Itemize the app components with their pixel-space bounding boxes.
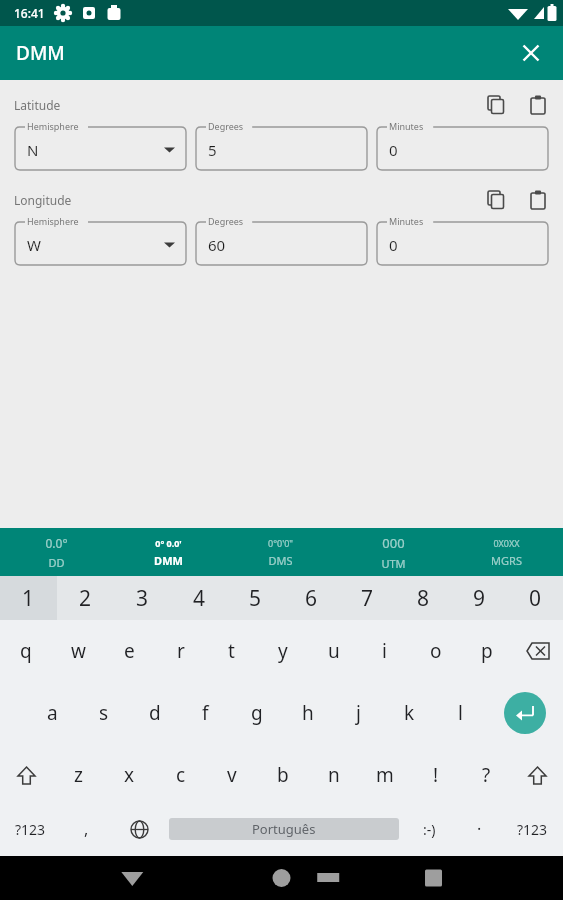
button[interactable]: 2 bbox=[57, 576, 114, 620]
button[interactable]: h bbox=[282, 682, 333, 744]
button[interactable]: p bbox=[461, 620, 512, 682]
staticText: q bbox=[20, 638, 32, 664]
staticText: 60 bbox=[208, 235, 226, 255]
button[interactable]: 0°0'0" bbox=[224, 528, 337, 576]
button[interactable]: Close bbox=[509, 31, 553, 75]
staticText: , bbox=[84, 818, 89, 840]
button[interactable]: s bbox=[78, 682, 129, 744]
staticText: 0X0XX bbox=[493, 537, 520, 549]
button[interactable]: c bbox=[155, 744, 206, 806]
staticText: n bbox=[328, 762, 340, 788]
button[interactable]: Copy bbox=[481, 187, 511, 213]
staticText: x bbox=[124, 762, 135, 788]
staticText: w bbox=[71, 638, 86, 664]
button[interactable]: g bbox=[231, 682, 282, 744]
button[interactable]: o bbox=[410, 620, 461, 682]
button[interactable]: w bbox=[52, 620, 104, 682]
button[interactable]: 6 bbox=[283, 576, 339, 620]
button[interactable]: Minutes bbox=[376, 120, 549, 171]
staticText: j bbox=[356, 700, 361, 726]
button[interactable]: 4 bbox=[171, 576, 227, 620]
staticText: MGRS bbox=[491, 553, 522, 568]
staticText: l bbox=[458, 700, 463, 726]
staticText: Minutes bbox=[389, 120, 424, 132]
staticText: h bbox=[302, 700, 314, 726]
button[interactable]: Shift bbox=[512, 744, 563, 806]
button[interactable]: r bbox=[155, 620, 206, 682]
button[interactable]: 0X0XX bbox=[450, 528, 563, 576]
button[interactable]: Hemisphere bbox=[14, 120, 187, 171]
staticText: Longitude bbox=[14, 192, 72, 208]
button[interactable]: x bbox=[104, 744, 155, 806]
button[interactable]: ? bbox=[461, 744, 512, 806]
button[interactable]: t bbox=[206, 620, 257, 682]
staticText: Latitude bbox=[14, 97, 61, 113]
button[interactable]: Backspace bbox=[512, 620, 563, 682]
button[interactable]: n bbox=[308, 744, 359, 806]
staticText: 4 bbox=[193, 584, 206, 613]
button[interactable]: , bbox=[61, 806, 111, 852]
button[interactable]: ?123 bbox=[502, 806, 563, 852]
button[interactable]: Degrees bbox=[195, 120, 368, 171]
button[interactable]: Paste bbox=[523, 92, 553, 118]
staticText: DMS bbox=[268, 553, 293, 568]
button[interactable]: Enter bbox=[486, 682, 563, 744]
button[interactable]: ?123 bbox=[0, 806, 61, 852]
staticText: N bbox=[27, 140, 39, 160]
staticText: 6 bbox=[305, 584, 318, 613]
button[interactable]: i bbox=[359, 620, 410, 682]
button[interactable]: Paste bbox=[523, 187, 553, 213]
button[interactable]: m bbox=[359, 744, 410, 806]
button[interactable]: 1 bbox=[0, 576, 57, 620]
button[interactable]: q bbox=[0, 620, 52, 682]
button[interactable]: l bbox=[435, 682, 486, 744]
staticText: k bbox=[404, 700, 415, 726]
button[interactable]: Hemisphere bbox=[14, 215, 187, 266]
button[interactable]: Change language bbox=[111, 806, 167, 852]
button[interactable]: 0 bbox=[507, 576, 563, 620]
button[interactable]: b bbox=[257, 744, 308, 806]
staticText: ?123 bbox=[15, 820, 46, 839]
button[interactable]: d bbox=[129, 682, 180, 744]
button[interactable]: :-) bbox=[401, 806, 457, 852]
button[interactable]: u bbox=[308, 620, 359, 682]
button[interactable]: Copy bbox=[481, 92, 511, 118]
button[interactable]: f bbox=[180, 682, 231, 744]
button[interactable]: v bbox=[206, 744, 257, 806]
button[interactable]: a bbox=[27, 682, 78, 744]
button[interactable]: 3 bbox=[114, 576, 171, 620]
button[interactable]: Português bbox=[169, 818, 399, 840]
button[interactable]: 7 bbox=[339, 576, 395, 620]
button[interactable]: 000 bbox=[337, 528, 450, 576]
button[interactable]: 9 bbox=[451, 576, 507, 620]
button[interactable]: k bbox=[384, 682, 435, 744]
staticText: ! bbox=[433, 762, 439, 788]
button[interactable]: Degrees bbox=[195, 215, 368, 266]
staticText: r bbox=[177, 638, 185, 664]
button[interactable]: · bbox=[457, 806, 502, 852]
staticText: 8 bbox=[417, 584, 430, 613]
staticText: 5 bbox=[208, 140, 217, 160]
button[interactable]: e bbox=[104, 620, 155, 682]
button[interactable]: 8 bbox=[395, 576, 451, 620]
staticText: z bbox=[74, 762, 83, 788]
staticText: ?123 bbox=[517, 820, 548, 839]
staticText: 0 bbox=[389, 235, 398, 255]
staticText: UTM bbox=[381, 556, 406, 571]
staticText: 000 bbox=[382, 534, 405, 552]
button[interactable]: 5 bbox=[227, 576, 283, 620]
button[interactable]: 0° 0.0' bbox=[112, 528, 224, 576]
staticText: 2 bbox=[79, 584, 92, 613]
button[interactable]: Minutes bbox=[376, 215, 549, 266]
button[interactable]: 0.0° bbox=[0, 528, 112, 576]
staticText: a bbox=[47, 700, 58, 726]
staticText: y bbox=[278, 638, 288, 664]
button[interactable]: y bbox=[257, 620, 308, 682]
staticText: · bbox=[477, 818, 482, 840]
button[interactable]: z bbox=[52, 744, 104, 806]
button[interactable]: Shift bbox=[0, 744, 52, 806]
button[interactable]: ! bbox=[410, 744, 461, 806]
button[interactable]: j bbox=[333, 682, 384, 744]
staticText: u bbox=[328, 638, 340, 664]
staticText: 16:41 bbox=[14, 5, 45, 21]
